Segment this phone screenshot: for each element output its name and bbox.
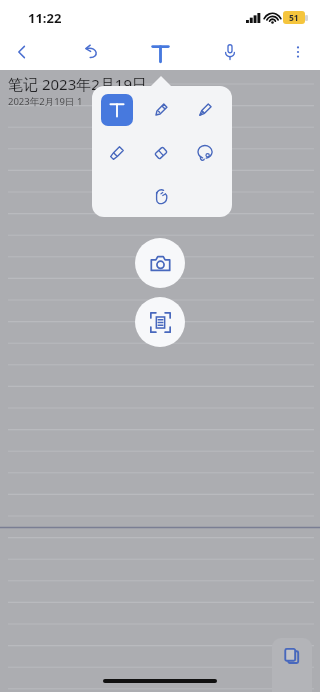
staticText: 2023年2月19日 1 xyxy=(8,95,83,108)
button[interactable]: Text tool xyxy=(144,37,176,69)
button[interactable]: Back xyxy=(8,38,36,66)
staticText: 笔记 2023年2月19日 xyxy=(8,74,147,94)
button[interactable]: Text tool xyxy=(95,88,139,131)
button[interactable]: Voice input xyxy=(216,38,244,66)
button[interactable]: Eraser xyxy=(139,131,183,174)
button[interactable]: Hand tool xyxy=(139,174,183,217)
button[interactable]: Camera xyxy=(135,238,185,288)
button[interactable]: Scan document xyxy=(135,297,185,347)
button[interactable]: Pages xyxy=(272,638,312,692)
button[interactable]: Pencil xyxy=(183,88,227,131)
staticText: 51 xyxy=(289,12,299,24)
staticText: 11:22 xyxy=(28,9,62,27)
button[interactable]: Highlighter xyxy=(95,131,139,174)
button[interactable]: Undo xyxy=(77,38,105,66)
button[interactable]: Pen xyxy=(139,88,183,131)
button[interactable]: More options xyxy=(284,38,312,66)
button[interactable]: Lasso select xyxy=(183,131,227,174)
